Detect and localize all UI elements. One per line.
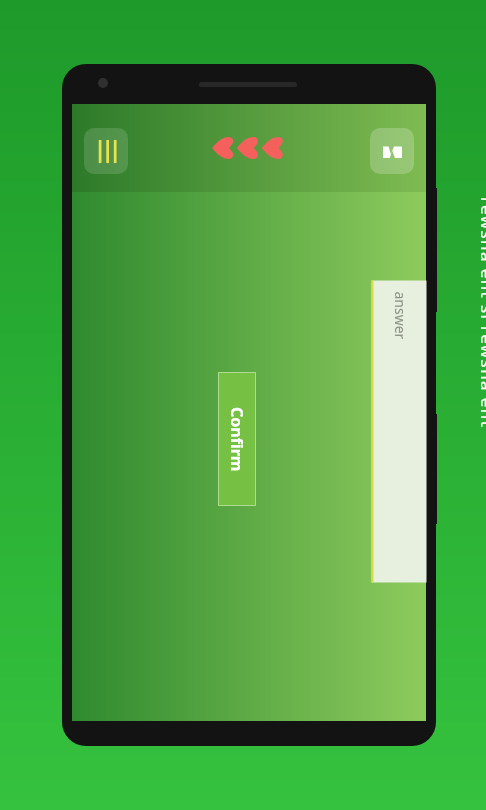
staticText: answer: [390, 291, 409, 339]
button[interactable]: Menu: [84, 128, 128, 174]
staticText: rewsna eht si rewsna eht: [476, 197, 486, 429]
button[interactable]: Confirm: [218, 372, 256, 506]
button[interactable]: answer: [371, 280, 426, 582]
button[interactable]: Sound: [370, 128, 414, 174]
staticText: Confirm: [226, 407, 248, 472]
